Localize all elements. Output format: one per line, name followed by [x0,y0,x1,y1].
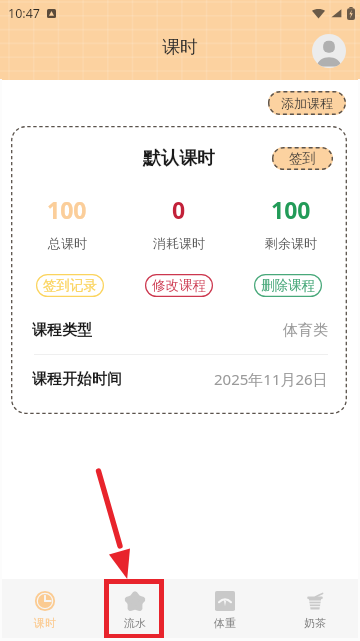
button[interactable]: 课程开始时间 [11,355,347,403]
button[interactable]: 体重 [180,579,270,641]
staticText: 默认课时 [143,147,215,170]
staticText: 课时 [34,616,56,630]
staticText: 添加课程 [281,95,333,111]
button[interactable]: 签到记录 [36,274,104,297]
staticText: 签到记录 [43,277,97,294]
staticText: 2025年11月26日 [214,369,328,389]
button[interactable]: 课程类型 [11,306,347,355]
button[interactable]: 签到 [272,147,333,170]
staticText: 体育类 [283,321,328,340]
staticText: 修改课程 [152,277,206,294]
staticText: 体重 [214,616,236,630]
staticText: 流水 [124,616,146,630]
staticText: 10:47 [8,5,40,22]
button[interactable]: 删除课程 [254,274,322,297]
staticText: 0 [172,194,186,225]
button[interactable]: Profile [312,34,346,68]
staticText: 100 [47,194,87,225]
staticText: 100 [271,194,311,225]
staticText: 课时 [162,36,198,59]
staticText: 课程类型 [32,321,92,340]
button[interactable]: 修改课程 [145,274,213,297]
staticText: 签到 [289,150,316,167]
staticText: 总课时 [48,235,87,251]
staticText: 消耗课时 [153,235,205,251]
button[interactable]: 添加课程 [268,91,346,115]
button[interactable]: 课时 [0,579,90,641]
button[interactable]: 奶茶 [270,579,360,641]
button[interactable]: 流水 [90,579,180,641]
staticText: 剩余课时 [265,235,317,251]
staticText: 删除课程 [261,277,315,294]
staticText: 奶茶 [304,616,326,630]
staticText: 课程开始时间 [32,370,122,389]
